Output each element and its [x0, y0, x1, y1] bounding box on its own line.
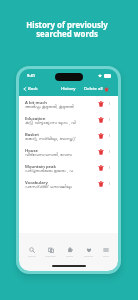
button[interactable]: Options Basket [105, 131, 114, 140]
staticText: House [25, 148, 38, 154]
staticText: Delete all [84, 86, 103, 92]
button[interactable]: Options Vocabulary [105, 179, 114, 188]
button[interactable]: Vocabulary [19, 178, 118, 194]
button[interactable]: Delete Basket [96, 131, 105, 140]
button[interactable]: Options A bit much [105, 99, 114, 108]
button[interactable]: House [19, 146, 118, 162]
staticText: Back [28, 86, 38, 92]
staticText: കുട്ടി, വിദ്യാഭ്യാസ യുഗം , വി [25, 120, 76, 126]
button[interactable]: A bit much [19, 98, 118, 114]
button[interactable]: Basket [19, 130, 118, 146]
staticText: A bit much [25, 100, 47, 106]
staticText: Search [28, 254, 36, 257]
button[interactable]: Delete all [80, 84, 118, 94]
button[interactable]: Delete A bit much [96, 99, 105, 108]
staticText: അൽപ്പം കൂടുതൽ, കൂടുതൽ [25, 104, 74, 110]
button[interactable]: Education [19, 114, 118, 130]
staticText: Favorite [84, 254, 94, 257]
staticText: വീട്ഭവനംവസതി, ഭവനം [25, 152, 73, 158]
staticText: Basket [25, 132, 39, 138]
staticText: പദസമ്പത്ത് പദാവലിയും [25, 184, 73, 190]
button[interactable]: Search [27, 246, 37, 258]
button[interactable]: History [59, 84, 78, 94]
button[interactable]: Delete Vocabulary [96, 179, 105, 188]
button[interactable]: Delete Education [96, 115, 105, 124]
staticText: കൊട്ട, സഞ്ചിയും, ബാസ്കറ്റ് [25, 136, 76, 142]
staticText: Education [25, 116, 46, 122]
button[interactable]: More [102, 246, 110, 258]
staticText: Translate [45, 254, 56, 257]
staticText: 9:41 [27, 73, 35, 78]
staticText: More [103, 254, 109, 257]
button[interactable]: Mountain peak [19, 162, 118, 178]
button[interactable]: Options Mountain peak [105, 163, 114, 172]
button[interactable]: Delete House [96, 147, 105, 156]
button[interactable]: Favorite [83, 246, 95, 258]
staticText: പർവ്വതശിഖരം ഉയരം , പ [25, 168, 73, 174]
staticText: Mountain peak [25, 164, 56, 170]
button[interactable]: Options House [105, 147, 114, 156]
staticText: Vocabulary [25, 180, 48, 186]
button[interactable]: Delete Mountain peak [96, 163, 105, 172]
button[interactable]: Puzzle [65, 246, 75, 258]
button[interactable]: Translate [44, 246, 57, 258]
button[interactable]: Options Education [105, 115, 114, 124]
staticText: History of previously searched words [0, 20, 134, 40]
staticText: Puzzle [66, 254, 74, 257]
button[interactable]: Back [19, 84, 42, 94]
